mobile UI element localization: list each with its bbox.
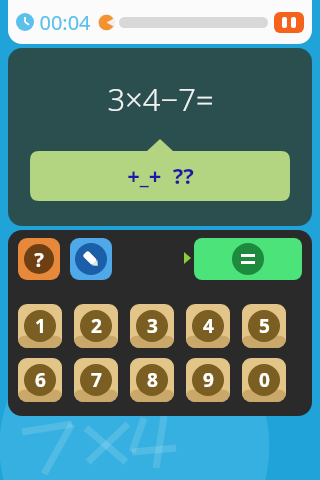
button[interactable]: 4 bbox=[186, 304, 230, 348]
button[interactable]: 5 bbox=[242, 304, 286, 348]
staticText: 0 bbox=[259, 367, 270, 393]
button[interactable]: 1 bbox=[18, 304, 62, 348]
staticText: 00:04 bbox=[39, 9, 91, 36]
button[interactable]: Erase bbox=[70, 238, 112, 280]
staticText: +_+ ?? bbox=[127, 160, 194, 190]
staticText: 9 bbox=[203, 367, 214, 393]
staticText: 6 bbox=[35, 367, 46, 393]
staticText: 2 bbox=[91, 313, 102, 339]
button[interactable]: 8 bbox=[130, 358, 174, 402]
staticText: ? bbox=[34, 246, 44, 273]
staticText: 7 bbox=[91, 367, 102, 393]
button[interactable]: 2 bbox=[74, 304, 118, 348]
button[interactable]: 6 bbox=[18, 358, 62, 402]
button[interactable]: Equals bbox=[194, 238, 302, 280]
staticText: 3×4−7= bbox=[107, 78, 214, 120]
staticText: 3 bbox=[147, 313, 158, 339]
button[interactable]: Hint bbox=[18, 238, 60, 280]
button[interactable]: 3 bbox=[130, 304, 174, 348]
button[interactable]: 0 bbox=[242, 358, 286, 402]
button[interactable]: 9 bbox=[186, 358, 230, 402]
button[interactable]: 7 bbox=[74, 358, 118, 402]
staticText: 4 bbox=[203, 313, 214, 339]
staticText: 8 bbox=[147, 367, 158, 393]
staticText: 5 bbox=[259, 313, 270, 339]
button[interactable]: Pause bbox=[274, 12, 304, 33]
staticText: 1 bbox=[35, 313, 46, 339]
